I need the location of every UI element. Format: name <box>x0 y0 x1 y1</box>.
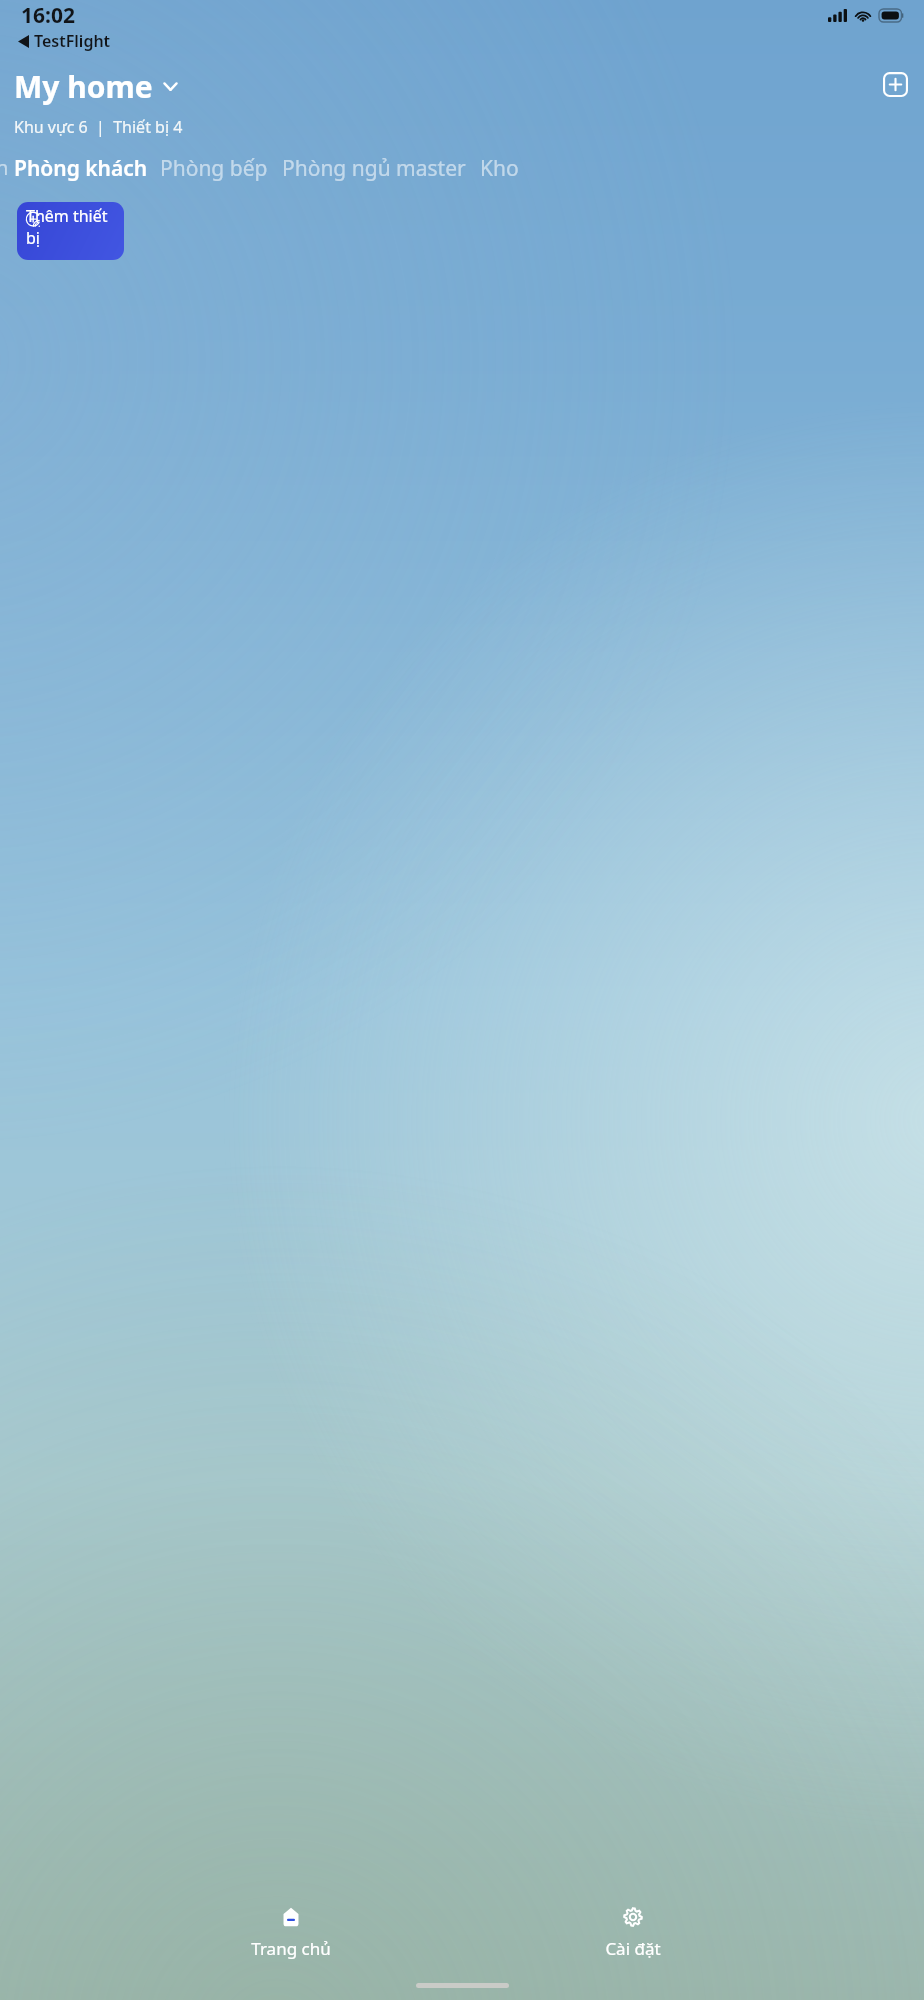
button[interactable]: My home <box>14 66 179 107</box>
staticText: n <box>0 154 7 181</box>
staticText: Khu vực 6 | Thiết bị 4 <box>14 116 183 138</box>
button[interactable]: Trang chủ <box>241 1902 341 1964</box>
staticText: Trang chủ <box>251 1937 331 1960</box>
staticText: Kho <box>480 154 519 183</box>
button[interactable]: Phòng ngủ master <box>282 154 466 183</box>
button[interactable]: n <box>0 154 11 181</box>
staticText: Phòng ngủ master <box>282 154 466 183</box>
button[interactable]: Thêm thiết bị <box>17 202 124 260</box>
staticText: My home <box>14 66 153 107</box>
button[interactable]: Add <box>883 72 908 97</box>
button[interactable]: Cài đặt <box>583 1902 683 1964</box>
staticText: TestFlight <box>34 30 111 52</box>
staticText: Cài đặt <box>605 1937 661 1960</box>
staticText: Thêm thiết bị <box>26 205 124 249</box>
button[interactable]: Phòng bếp <box>160 154 268 183</box>
staticText: 16:02 <box>21 1 75 30</box>
staticText: Phòng bếp <box>160 154 268 183</box>
button[interactable]: Phòng khách <box>14 154 148 188</box>
staticText: Phòng khách <box>14 154 148 183</box>
button[interactable]: Kho <box>480 154 519 183</box>
